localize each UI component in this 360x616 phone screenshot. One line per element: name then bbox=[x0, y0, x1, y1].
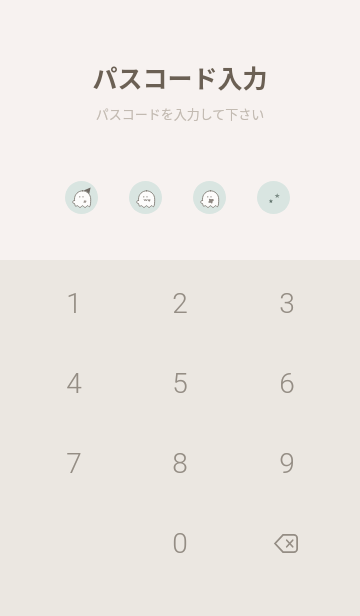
staticText: パスコードを入力して下さい bbox=[0, 104, 360, 123]
button[interactable]: 6 bbox=[249, 351, 325, 415]
button[interactable]: 0 bbox=[142, 511, 218, 575]
button[interactable]: 5 bbox=[142, 351, 218, 415]
button[interactable]: 2 bbox=[142, 271, 218, 335]
staticText: パスコード入力 bbox=[0, 59, 360, 95]
button[interactable]: 9 bbox=[249, 431, 325, 495]
button[interactable]: Backspace bbox=[248, 511, 324, 575]
button[interactable]: 3 bbox=[249, 271, 325, 335]
staticText: 2 bbox=[172, 287, 188, 320]
staticText: 5 bbox=[172, 367, 188, 400]
staticText: 7 bbox=[66, 447, 82, 480]
staticText: 9 bbox=[279, 447, 295, 480]
staticText: 6 bbox=[279, 367, 295, 400]
staticText: 4 bbox=[66, 367, 82, 400]
staticText: 3 bbox=[279, 287, 295, 320]
staticText: 1 bbox=[66, 287, 82, 320]
button[interactable]: 4 bbox=[36, 351, 112, 415]
button[interactable]: 8 bbox=[142, 431, 218, 495]
staticText: 0 bbox=[172, 527, 188, 560]
staticText: 8 bbox=[172, 447, 188, 480]
button[interactable]: 1 bbox=[36, 271, 112, 335]
button[interactable]: 7 bbox=[36, 431, 112, 495]
